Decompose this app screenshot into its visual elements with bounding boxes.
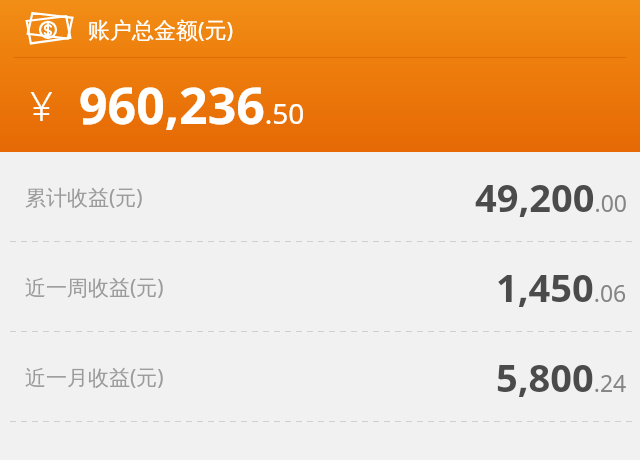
staticText: 960,236.50	[79, 71, 305, 139]
button[interactable]: 近一周收益(元)	[0, 242, 640, 332]
staticText: 账户总金额(元)	[88, 14, 234, 44]
staticText: 累计收益(元)	[25, 183, 143, 212]
button[interactable]: 近一月收益(元)	[0, 332, 640, 422]
staticText: 近一月收益(元)	[25, 363, 164, 392]
staticText: ¥	[30, 78, 53, 132]
staticText: 5,800.24	[496, 351, 627, 403]
staticText: 近一周收益(元)	[25, 273, 164, 302]
other: Account balance	[22, 9, 74, 49]
staticText: 1,450.06	[496, 261, 627, 313]
button[interactable]: 累计收益(元)	[0, 152, 640, 242]
staticText: 49,200.00	[475, 171, 627, 223]
button[interactable]: Account balance	[0, 0, 640, 152]
